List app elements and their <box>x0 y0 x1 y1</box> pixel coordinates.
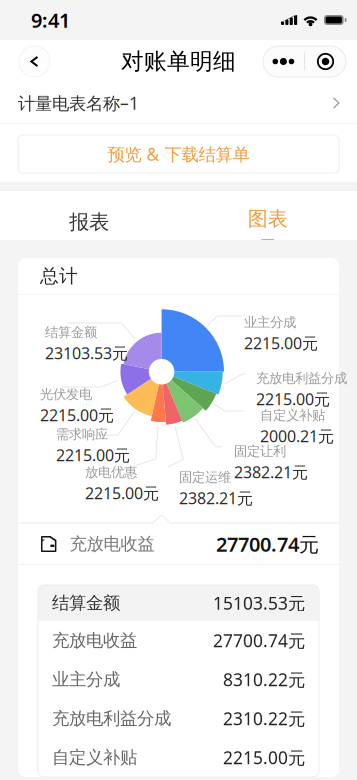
staticText: 放电优惠 <box>85 464 137 480</box>
staticText: 固定运维 <box>179 469 231 485</box>
staticText: 2215.00元 <box>244 332 318 354</box>
staticText: 2382.21元 <box>179 487 253 509</box>
staticText: 业主分成 <box>244 314 296 330</box>
staticText: 27700.74元 <box>216 531 319 557</box>
staticText: 光伏发电 <box>40 386 92 402</box>
button[interactable]: 图表 <box>178 191 357 240</box>
staticText: 2215.00元 <box>85 482 159 504</box>
staticText: 图表 <box>248 206 288 231</box>
staticText: 27700.74元 <box>213 629 305 652</box>
staticText: 总计 <box>40 264 78 287</box>
staticText: 2382.21元 <box>234 461 308 483</box>
button[interactable]: 报表 <box>0 191 178 240</box>
staticText: 充放电收益 <box>69 533 154 555</box>
button[interactable]: 计量电表名称–1 <box>0 83 357 123</box>
staticText: 对账单明细 <box>121 48 236 75</box>
staticText: 8310.22元 <box>223 668 305 691</box>
staticText: 2310.22元 <box>223 707 305 730</box>
staticText: 充放电利益分成 <box>52 708 171 729</box>
staticText: 计量电表名称–1 <box>18 91 139 114</box>
staticText: 9:41 <box>31 7 70 33</box>
staticText: 结算金额 <box>45 324 97 340</box>
staticText: 结算金额 <box>52 592 120 614</box>
button[interactable]: Back <box>19 46 50 77</box>
staticText: 自定义补贴 <box>52 747 137 768</box>
staticText: 2215.00元 <box>40 404 114 426</box>
staticText: 15103.53元 <box>213 591 305 614</box>
staticText: 业主分成 <box>52 669 120 690</box>
staticText: 充放电收益 <box>52 630 137 651</box>
button[interactable]: More options <box>263 46 346 77</box>
staticText: 报表 <box>69 210 109 234</box>
button[interactable]: 预览 & 下载结算单 <box>0 124 357 182</box>
staticText: 2215.00元 <box>223 746 305 769</box>
staticText: 固定让利 <box>234 443 286 459</box>
staticText: 预览 & 下载结算单 <box>107 142 249 165</box>
staticText: 充放电利益分成 <box>256 370 347 386</box>
staticText: 2215.00元 <box>256 388 330 410</box>
staticText: 需求响应 <box>56 426 108 442</box>
staticText: 2000.21元 <box>260 425 334 447</box>
staticText: 自定义补贴 <box>260 407 325 423</box>
staticText: 23103.53元 <box>45 342 128 364</box>
staticText: 2215.00元 <box>56 444 130 466</box>
